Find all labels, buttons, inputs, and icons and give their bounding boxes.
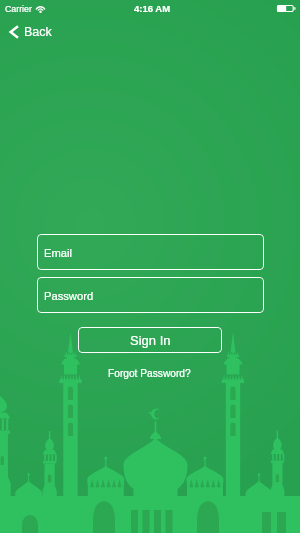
- button[interactable]: Sign In: [78, 327, 222, 353]
- button[interactable]: Back: [5, 19, 58, 43]
- staticText: Back: [24, 25, 52, 39]
- button[interactable]: Email: [37, 234, 264, 270]
- staticText: 4:16 AM: [134, 3, 171, 14]
- staticText: Forgot Password?: [108, 368, 191, 379]
- button[interactable]: Password: [37, 277, 264, 313]
- button[interactable]: Forgot Password?: [102, 362, 196, 384]
- staticText: Email: [44, 247, 72, 260]
- staticText: Password: [44, 290, 94, 303]
- staticText: Carrier: [5, 4, 32, 14]
- staticText: Sign In: [130, 333, 171, 348]
